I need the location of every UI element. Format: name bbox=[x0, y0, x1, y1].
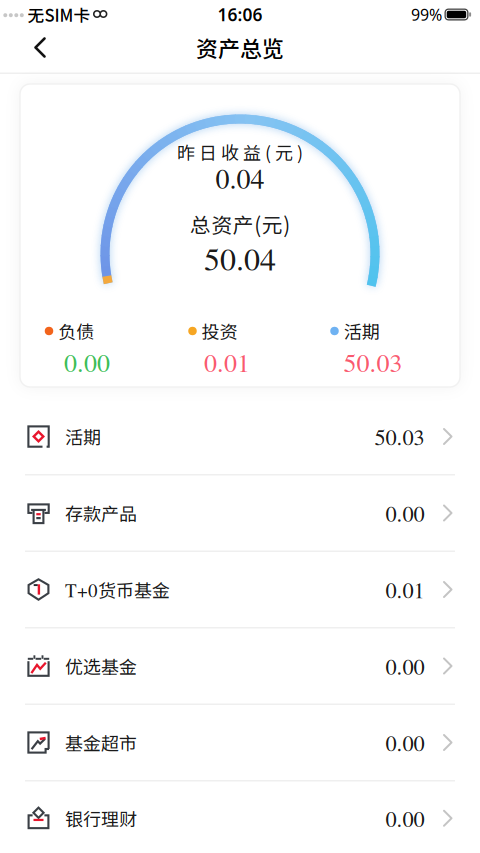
staticText: 0.00 bbox=[64, 345, 110, 379]
staticText: 99% bbox=[411, 4, 442, 25]
staticText: 总资产(元) bbox=[190, 209, 290, 239]
staticText: 银行理财 bbox=[65, 805, 137, 831]
button[interactable]: Back bbox=[20, 27, 60, 67]
staticText: 0.00 bbox=[385, 727, 424, 757]
staticText: 0.01 bbox=[385, 574, 424, 604]
button[interactable]: 活期 bbox=[0, 399, 480, 475]
staticText: 50.03 bbox=[374, 421, 424, 451]
staticText: 无SIM卡 bbox=[27, 2, 90, 26]
staticText: 活期 bbox=[65, 423, 101, 450]
staticText: 50.03 bbox=[343, 345, 402, 379]
button[interactable]: 基金超市 bbox=[0, 705, 480, 781]
staticText: 50.04 bbox=[204, 237, 276, 279]
staticText: 负债 bbox=[58, 318, 94, 344]
staticText: 昨日收益(元) bbox=[177, 139, 303, 165]
staticText: 基金超市 bbox=[65, 729, 137, 756]
staticText: 0.04 bbox=[215, 159, 264, 197]
staticText: 0.01 bbox=[204, 345, 250, 379]
button[interactable]: T+0货币基金 bbox=[0, 552, 480, 628]
staticText: T+0货币基金 bbox=[65, 577, 170, 602]
staticText: 存款产品 bbox=[65, 500, 137, 526]
staticText: 0.00 bbox=[385, 498, 424, 528]
staticText: 资产总览 bbox=[196, 32, 284, 63]
staticText: 投资 bbox=[202, 318, 238, 344]
staticText: 16:06 bbox=[217, 3, 262, 26]
staticText: 0.00 bbox=[385, 651, 424, 681]
button[interactable]: 优选基金 bbox=[0, 628, 480, 705]
staticText: 活期 bbox=[344, 318, 380, 344]
button[interactable]: 银行理财 bbox=[0, 781, 480, 853]
button[interactable]: 存款产品 bbox=[0, 475, 480, 552]
staticText: 优选基金 bbox=[65, 653, 137, 679]
staticText: 0.00 bbox=[385, 803, 424, 833]
